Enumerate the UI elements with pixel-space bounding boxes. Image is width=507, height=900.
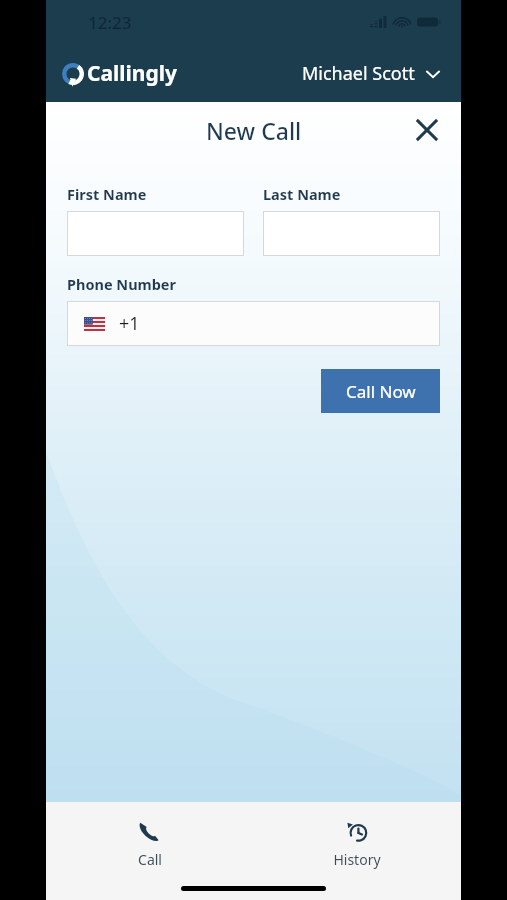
button[interactable]: Call (46, 816, 253, 873)
staticText: Callingly (87, 59, 178, 88)
button[interactable]: Last Name (263, 211, 440, 256)
button[interactable]: First Name (67, 211, 244, 256)
staticText: New Call (206, 115, 302, 146)
staticText: 12:23 (88, 11, 132, 34)
button[interactable]: Callingly (62, 59, 178, 88)
staticText: History (333, 850, 381, 869)
staticText: +1 (119, 311, 140, 336)
button[interactable]: History (253, 816, 461, 873)
button[interactable]: Close (405, 108, 449, 152)
staticText: First Name (67, 184, 147, 204)
staticText: Last Name (263, 184, 341, 204)
button[interactable]: Call Now (321, 369, 440, 413)
staticText: Michael Scott (302, 61, 415, 86)
button[interactable]: Michael Scott (298, 55, 445, 92)
staticText: Call Now (346, 380, 416, 403)
button[interactable]: +1 (67, 301, 440, 346)
staticText: Phone Number (67, 274, 176, 294)
staticText: Call (138, 850, 162, 869)
